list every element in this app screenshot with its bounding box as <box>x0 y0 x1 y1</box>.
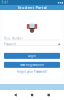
staticText: Reg. Number <box>4 37 23 40</box>
staticText: ▪▪▮ <box>57 1 62 4</box>
button[interactable]: Home <box>31 94 33 96</box>
button[interactable]: Recents <box>47 94 50 96</box>
button[interactable]: New Registration <box>2 62 62 68</box>
staticText: Student Portal <box>17 5 46 10</box>
staticText: ◉ <box>58 43 60 46</box>
staticText: Password <box>4 42 16 46</box>
staticText: Login <box>28 54 36 58</box>
staticText: New Registration <box>20 63 44 67</box>
button[interactable]: Back <box>14 93 17 97</box>
staticText: 9:41 <box>1 1 8 4</box>
staticText: Forgot your Password? <box>17 70 47 73</box>
button[interactable]: Forgot your Password? <box>17 70 47 73</box>
button[interactable]: Login <box>2 53 62 59</box>
